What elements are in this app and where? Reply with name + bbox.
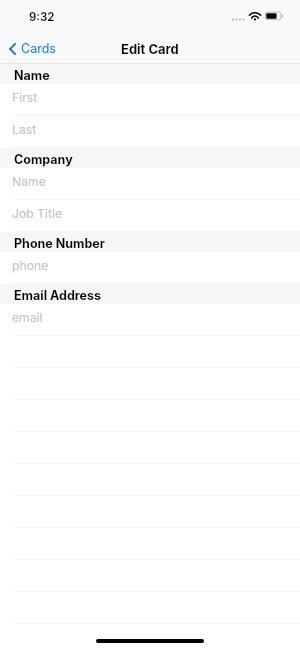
button[interactable]: First (0, 84, 300, 116)
button[interactable]: Last (0, 116, 300, 148)
staticText: First (12, 90, 38, 105)
button[interactable]: Back to Cards (0, 37, 66, 60)
staticText: Phone Number (14, 236, 105, 251)
staticText: Cards (21, 41, 56, 56)
button[interactable]: Name (0, 168, 300, 200)
other: Back to Cards (9, 43, 16, 55)
button[interactable]: Job Title (0, 200, 300, 232)
staticText: Name (14, 68, 50, 83)
staticText: email (12, 310, 43, 325)
button[interactable]: phone (0, 252, 300, 284)
staticText: Email Address (14, 288, 102, 303)
staticText: Company (14, 152, 73, 167)
staticText: phone (12, 258, 49, 273)
staticText: 9:32 (29, 10, 55, 24)
button[interactable]: email (0, 304, 300, 336)
staticText: Name (12, 174, 46, 189)
staticText: Edit Card (121, 41, 179, 57)
staticText: Job Title (12, 206, 63, 221)
staticText: Last (12, 122, 37, 137)
